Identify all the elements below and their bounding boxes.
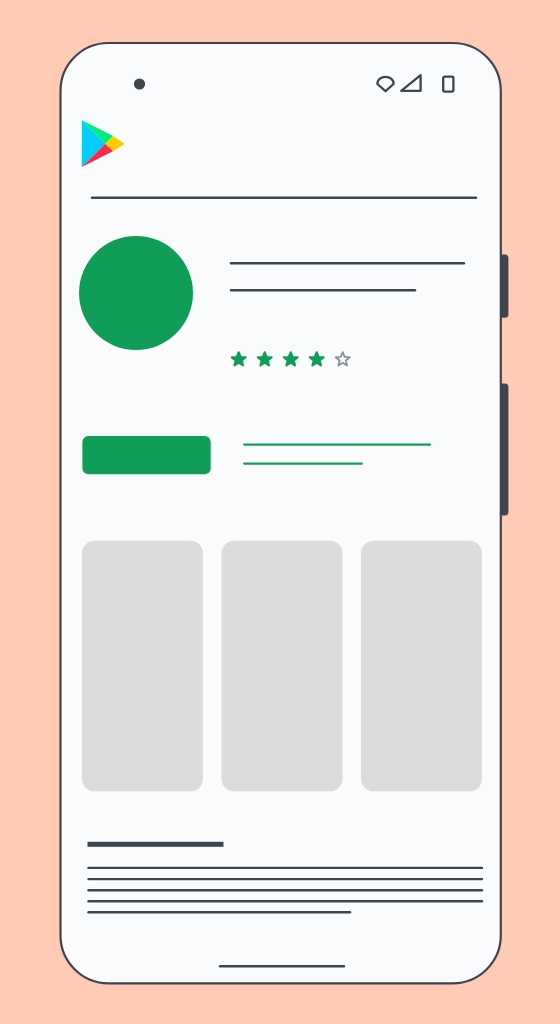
button[interactable]: About this app bbox=[88, 838, 483, 920]
button[interactable]: Screenshot 3 bbox=[360, 540, 482, 791]
button[interactable]: Rating 4 of 5 stars bbox=[228, 348, 354, 372]
button[interactable]: Screenshot 2 bbox=[221, 540, 343, 791]
button[interactable]: App icon bbox=[79, 236, 193, 350]
button[interactable]: Install bbox=[82, 435, 213, 475]
button[interactable]: Google Play bbox=[78, 114, 130, 172]
button[interactable]: Screenshot 1 bbox=[82, 540, 204, 791]
